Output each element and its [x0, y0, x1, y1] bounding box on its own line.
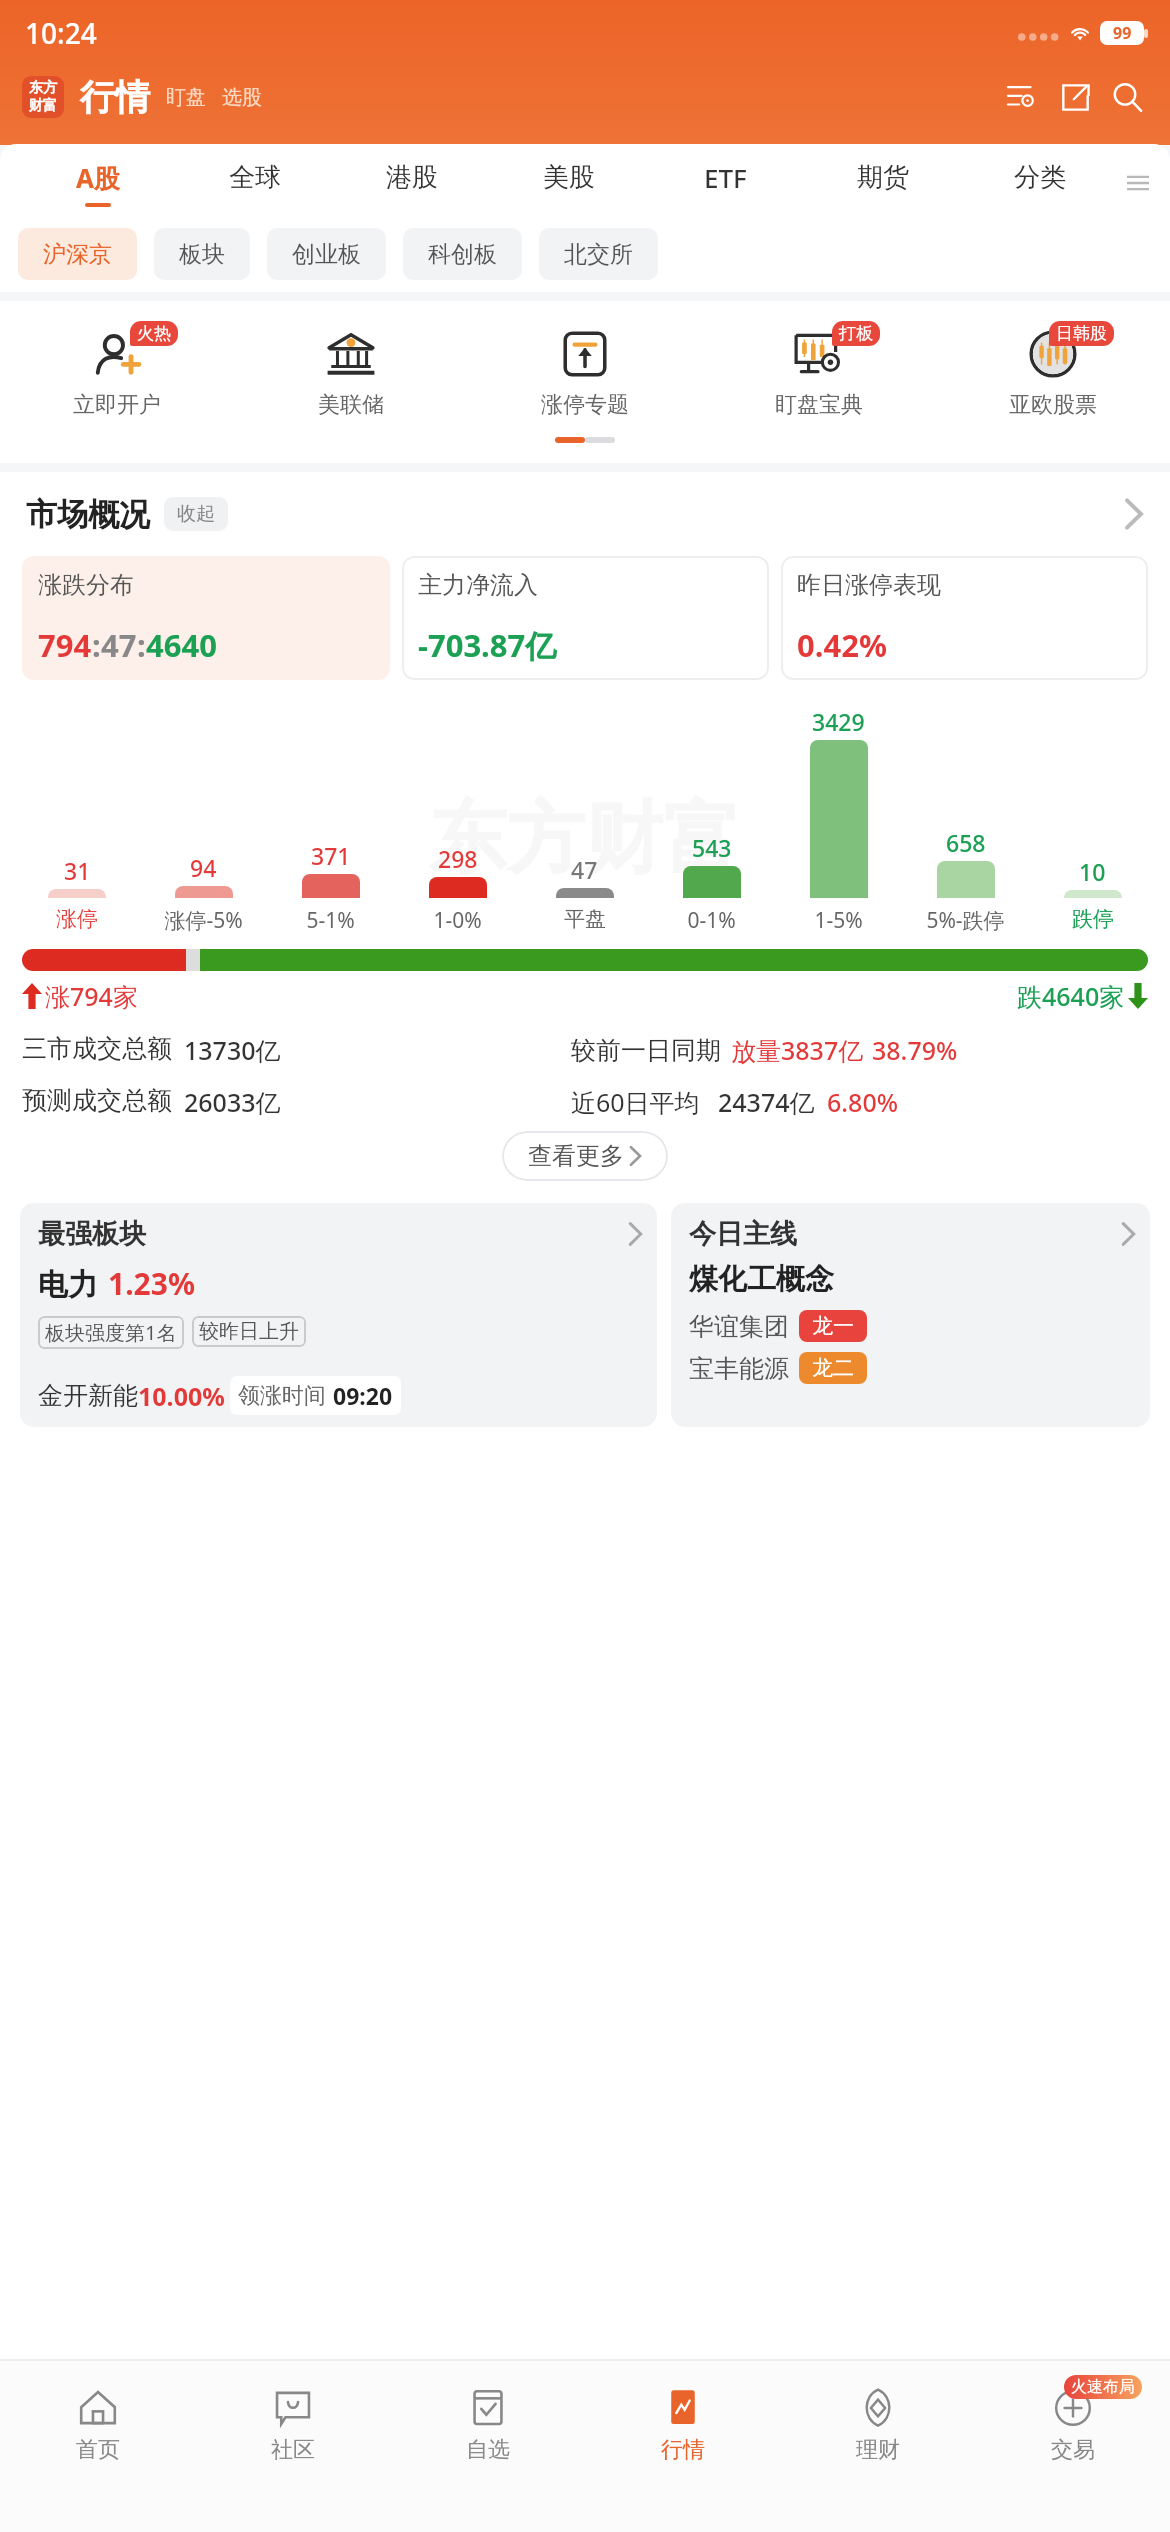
staticText: 财富	[29, 97, 57, 115]
staticText: 龙二	[812, 1355, 854, 1381]
button[interactable]: 打板	[702, 319, 936, 423]
button[interactable]: 主力净流入	[402, 556, 769, 680]
button[interactable]: 理财	[780, 2379, 975, 2470]
button[interactable]: 最强板块	[20, 1203, 657, 1427]
staticText: 跌停	[1072, 906, 1114, 932]
staticText: 0.42%	[797, 624, 887, 666]
staticText: 24374亿	[718, 1085, 815, 1119]
staticText: 09:20	[333, 1380, 393, 1411]
staticText: 美联储	[318, 391, 384, 419]
button[interactable]: 今日主线	[671, 1203, 1150, 1427]
staticText: 北交所	[564, 240, 633, 269]
staticText: 1.23%	[108, 1263, 195, 1304]
button[interactable]: A股	[20, 144, 176, 222]
button[interactable]: 北交所	[539, 228, 658, 280]
staticText: 涨停-5%	[164, 906, 243, 935]
button[interactable]: 板块	[154, 228, 250, 280]
staticText: 盯盘	[166, 85, 206, 110]
staticText: 47	[571, 854, 598, 885]
staticText: 领涨时间	[238, 1382, 326, 1410]
staticText: 最强板块	[38, 1217, 146, 1251]
staticText: A股	[76, 160, 120, 196]
button[interactable]: 东方财富	[22, 76, 64, 118]
staticText: 涨停专题	[541, 391, 629, 419]
button[interactable]: 创业板	[267, 228, 386, 280]
staticText: 首页	[76, 2436, 120, 2464]
staticText: 东方	[29, 79, 57, 97]
staticText: 1-5%	[814, 906, 863, 935]
staticText: 658	[946, 827, 986, 858]
staticText: 交易	[1051, 2436, 1095, 2464]
staticText: 查看更多	[528, 1141, 624, 1171]
staticText: 分类	[1014, 161, 1066, 194]
button[interactable]: 昨日涨停表现	[781, 556, 1148, 680]
staticText: 794	[38, 624, 92, 666]
staticText: 5-1%	[306, 906, 355, 935]
button[interactable]: 行情	[80, 75, 150, 119]
staticText: 创业板	[292, 240, 361, 269]
staticText: 宝丰能源	[689, 1353, 789, 1384]
staticText: 沪深京	[43, 240, 112, 269]
staticText: 26033亿	[184, 1085, 281, 1119]
staticText: 选股	[222, 85, 262, 110]
button[interactable]: 市场概况	[0, 472, 1170, 556]
staticText: 38.79%	[872, 1033, 958, 1067]
button[interactable]: 首页	[0, 2379, 195, 2470]
button[interactable]: 查看更多	[502, 1131, 668, 1181]
staticText: 亚欧股票	[1009, 391, 1097, 419]
button[interactable]: Search	[1104, 74, 1150, 120]
staticText: 预测成交总额	[22, 1085, 172, 1116]
staticText: 电力	[38, 1266, 98, 1304]
button[interactable]: 分类	[961, 144, 1118, 222]
button[interactable]: 盯盘	[166, 79, 206, 116]
staticText: 3429	[812, 706, 865, 737]
staticText: 31	[64, 855, 91, 886]
staticText: 火速布局	[1071, 2377, 1135, 2397]
staticText: 较昨日上升	[199, 1319, 299, 1344]
button[interactable]: 美股	[490, 144, 647, 222]
button[interactable]: 火热	[0, 319, 234, 423]
button[interactable]: 美联储	[234, 319, 468, 423]
staticText: 龙一	[812, 1313, 854, 1339]
button[interactable]: 涨跌分布	[22, 556, 390, 680]
staticText: 煤化工概念	[689, 1261, 834, 1298]
button[interactable]: Settings	[998, 74, 1044, 120]
button[interactable]: 港股	[333, 144, 490, 222]
button[interactable]: 社区	[195, 2379, 390, 2470]
staticText: 港股	[386, 161, 438, 194]
staticText: 543	[692, 832, 732, 863]
staticText: 主力净流入	[418, 570, 538, 600]
staticText: 平盘	[564, 906, 606, 932]
button[interactable]: 日韩股	[936, 319, 1170, 423]
button[interactable]: 科创板	[403, 228, 522, 280]
button[interactable]: More categories	[1118, 144, 1158, 222]
button[interactable]: ETF	[647, 144, 804, 222]
staticText: 行情	[80, 75, 150, 119]
staticText: 1-0%	[433, 906, 482, 935]
staticText: 放量3837亿	[731, 1033, 864, 1067]
staticText: 10	[1079, 856, 1106, 887]
staticText: 盯盘宝典	[775, 391, 863, 419]
staticText: 0-1%	[687, 906, 736, 935]
button[interactable]: 涨停专题	[468, 319, 702, 423]
button[interactable]: 自选	[390, 2379, 585, 2470]
staticText: ETF	[704, 160, 747, 195]
button[interactable]: 选股	[222, 79, 262, 116]
staticText: :	[92, 624, 101, 666]
button[interactable]: 行情	[585, 2379, 780, 2470]
staticText: 99	[1113, 22, 1132, 44]
button[interactable]: 全球	[176, 144, 333, 222]
staticText: 收起	[177, 502, 215, 526]
button[interactable]: 交易	[975, 2379, 1170, 2470]
staticText: 社区	[271, 2436, 315, 2464]
staticText: 日韩股	[1056, 323, 1107, 344]
button[interactable]: 收起	[164, 497, 228, 531]
button[interactable]: Share	[1052, 74, 1098, 120]
button[interactable]: 沪深京	[18, 228, 137, 280]
staticText: 火热	[137, 323, 171, 344]
button[interactable]: 期货	[804, 144, 961, 222]
staticText: -703.87亿	[418, 624, 557, 666]
staticText: 华谊集团	[689, 1311, 789, 1342]
staticText: 东方财富	[429, 790, 741, 888]
staticText: 298	[438, 843, 478, 874]
